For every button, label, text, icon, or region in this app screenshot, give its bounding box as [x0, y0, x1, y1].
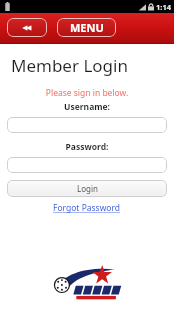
button[interactable]: Login	[7, 180, 167, 197]
staticText: Login	[77, 183, 98, 194]
staticText: Username:	[7, 101, 167, 113]
button[interactable]: Back	[7, 18, 47, 37]
button[interactable]	[7, 157, 167, 173]
button[interactable]: MENU	[57, 18, 116, 37]
staticText: 1:14	[156, 2, 171, 12]
staticText: MENU	[70, 20, 104, 35]
button[interactable]: Forgot Password	[7, 202, 167, 214]
other: USAPA Pickleball logo	[49, 266, 125, 300]
staticText: Password:	[7, 141, 167, 153]
staticText: Forgot Password	[53, 202, 121, 214]
staticText: Please sign in below.	[7, 87, 167, 99]
button[interactable]	[7, 117, 167, 133]
staticText: Member Login	[11, 54, 128, 77]
staticText: ◂◂	[23, 23, 32, 32]
